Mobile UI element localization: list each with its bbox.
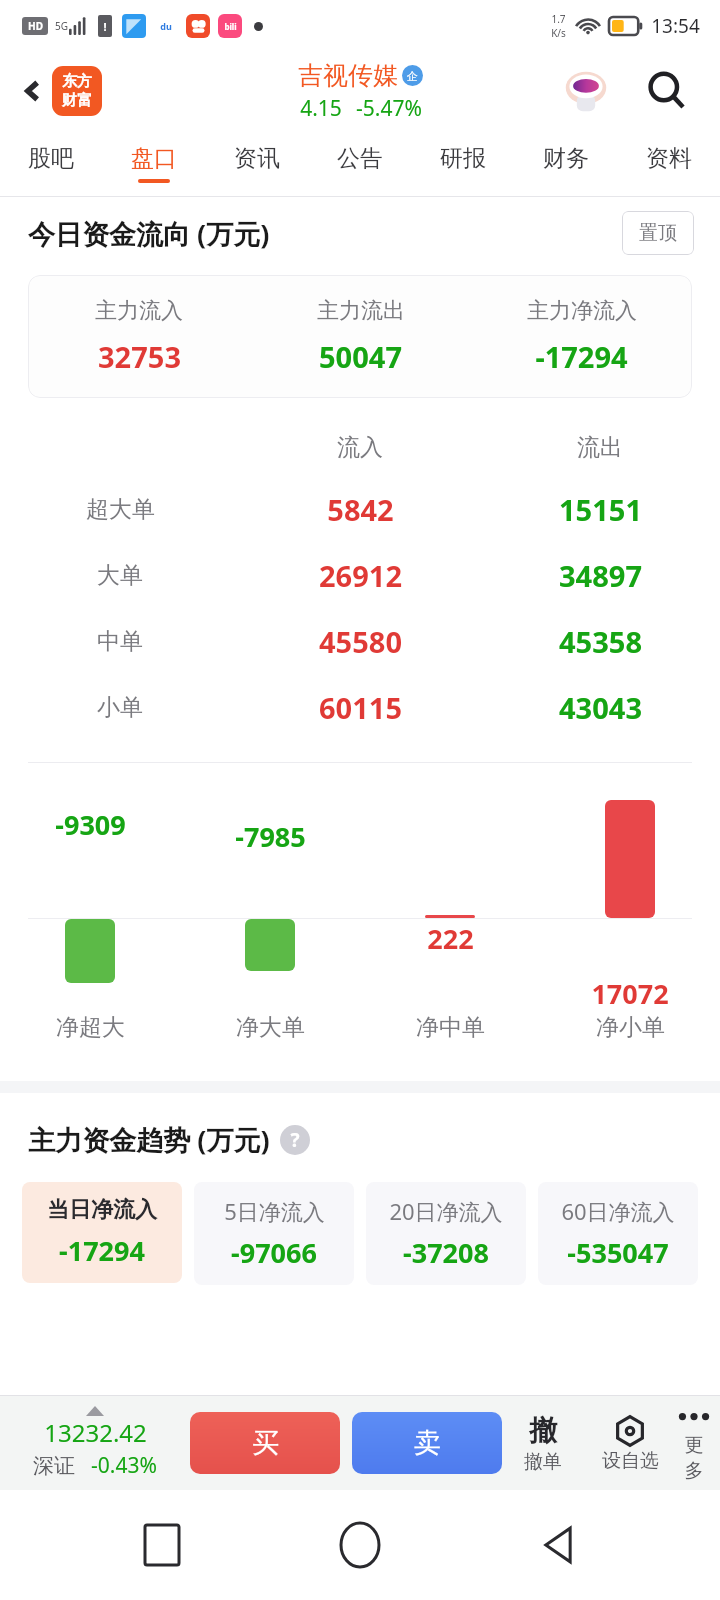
button[interactable]: 公告: [308, 130, 411, 196]
staticText: 吉视传媒: [298, 60, 398, 91]
staticText: 34897: [559, 556, 642, 595]
staticText: K/s: [551, 26, 566, 40]
staticText: 净中单: [416, 1013, 485, 1042]
button[interactable]: 卖: [352, 1412, 502, 1474]
staticText: 45358: [559, 622, 642, 661]
staticText: 流入: [337, 433, 383, 462]
button[interactable]: 更多: [676, 1404, 712, 1483]
staticText: 5842: [327, 490, 394, 529]
staticText: -17294: [535, 337, 628, 376]
staticText: 资料: [646, 144, 692, 173]
staticText: -535047: [567, 1234, 669, 1271]
button[interactable]: Back: [522, 1509, 594, 1581]
staticText: 50047: [319, 337, 402, 376]
button[interactable]: 超大单: [0, 476, 720, 542]
staticText: 主力净流入: [527, 297, 637, 325]
button[interactable]: 吉视传媒: [298, 60, 423, 123]
staticText: 5日净流入: [224, 1196, 325, 1226]
staticText: 净小单: [596, 1013, 665, 1042]
staticText: du: [160, 20, 172, 32]
staticText: 主力流出: [317, 297, 405, 325]
staticText: 60115: [319, 688, 402, 727]
button[interactable]: 研报: [411, 130, 514, 196]
staticText: 深证: [33, 1453, 75, 1479]
staticText: 财富: [62, 91, 92, 110]
button[interactable]: Help: [280, 1125, 310, 1155]
button[interactable]: 买: [190, 1412, 340, 1474]
staticText: -9309: [55, 806, 126, 843]
staticText: 超大单: [86, 495, 155, 524]
staticText: -97066: [231, 1234, 317, 1271]
staticText: 流出: [577, 433, 623, 462]
staticText: 13:54: [651, 13, 700, 39]
button[interactable]: Assistant: [560, 65, 612, 117]
button[interactable]: Back: [14, 72, 52, 110]
staticText: 5G: [55, 19, 68, 33]
staticText: ?: [290, 1127, 300, 1153]
button[interactable]: 主力流入: [28, 275, 692, 398]
staticText: -7985: [235, 818, 306, 855]
button[interactable]: Search: [640, 64, 694, 118]
button[interactable]: 60日净流入: [538, 1182, 698, 1285]
button[interactable]: 当日净流入: [22, 1182, 182, 1283]
button[interactable]: 设自选: [584, 1414, 676, 1473]
staticText: !: [103, 19, 107, 34]
staticText: HD: [28, 19, 43, 33]
staticText: -5.47%: [356, 94, 422, 123]
staticText: 更多: [676, 1433, 712, 1483]
button[interactable]: 中单: [0, 608, 720, 674]
staticText: 买: [252, 1426, 279, 1460]
button[interactable]: 盘口: [102, 130, 205, 196]
staticText: 资讯: [234, 144, 280, 173]
staticText: 26912: [319, 556, 402, 595]
staticText: 净超大: [56, 1013, 125, 1042]
staticText: 财务: [543, 144, 589, 173]
button[interactable]: East Money: [52, 66, 102, 116]
staticText: 今日资金流向 (万元): [28, 215, 270, 252]
staticText: 中单: [97, 627, 143, 656]
staticText: 公告: [337, 144, 383, 173]
button[interactable]: 20日净流入: [366, 1182, 526, 1285]
staticText: 撤单: [524, 1450, 562, 1474]
staticText: 13232.42: [44, 1416, 147, 1449]
staticText: 当日净流入: [47, 1196, 157, 1224]
staticText: -0.43%: [91, 1451, 157, 1480]
staticText: 盘口: [131, 144, 177, 173]
staticText: 43043: [559, 688, 642, 727]
staticText: 企: [407, 69, 418, 83]
staticText: 222: [427, 920, 474, 957]
button[interactable]: 13232.42: [0, 1406, 190, 1480]
staticText: 大单: [97, 561, 143, 590]
staticText: 小单: [97, 693, 143, 722]
button[interactable]: 资料: [617, 130, 720, 196]
button[interactable]: 财务: [514, 130, 617, 196]
staticText: 研报: [440, 144, 486, 173]
staticText: 60日净流入: [561, 1196, 675, 1226]
staticText: 15151: [559, 490, 642, 529]
button[interactable]: 置顶: [622, 211, 694, 255]
staticText: 卖: [414, 1426, 441, 1460]
staticText: 撤: [529, 1413, 557, 1448]
staticText: 20日净流入: [389, 1196, 503, 1226]
button[interactable]: 大单: [0, 542, 720, 608]
staticText: 股吧: [28, 144, 74, 173]
staticText: 东方: [62, 72, 92, 91]
staticText: 主力资金趋势 (万元): [28, 1121, 270, 1158]
staticText: -37208: [403, 1234, 489, 1271]
staticText: 设自选: [602, 1449, 659, 1473]
staticText: 17072: [591, 975, 669, 1012]
staticText: 净大单: [236, 1013, 305, 1042]
staticText: 主力流入: [95, 297, 183, 325]
button[interactable]: 撤: [502, 1413, 584, 1474]
staticText: 45580: [319, 622, 402, 661]
staticText: 4.15: [300, 94, 342, 123]
staticText: bili: [224, 21, 237, 32]
staticText: 1.7: [551, 12, 566, 26]
button[interactable]: Recents: [126, 1509, 198, 1581]
button[interactable]: 股吧: [0, 130, 102, 196]
button[interactable]: 5日净流入: [194, 1182, 354, 1285]
button[interactable]: 资讯: [205, 130, 308, 196]
button[interactable]: Home: [324, 1509, 396, 1581]
staticText: 32753: [98, 337, 181, 376]
button[interactable]: 小单: [0, 674, 720, 740]
